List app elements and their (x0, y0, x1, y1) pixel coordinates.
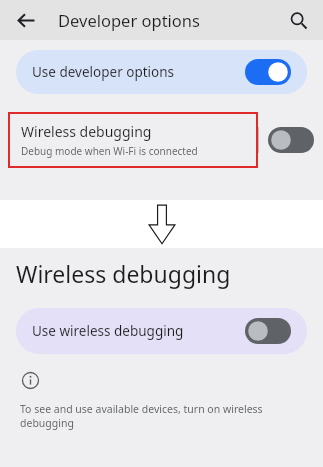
button[interactable]: Use developer options (16, 50, 307, 94)
staticText: Use developer options (32, 63, 245, 81)
staticText: Developer options (58, 9, 200, 31)
button[interactable]: Wireless debugging toggle (259, 112, 323, 168)
staticText: Debug mode when Wi-Fi is connected (21, 144, 198, 158)
staticText: Use wireless debugging (32, 322, 245, 340)
button[interactable]: Use wireless debugging (16, 308, 307, 354)
button[interactable]: Back (10, 4, 42, 36)
button[interactable]: Search (283, 5, 313, 35)
staticText: Wireless debugging (21, 122, 152, 141)
button[interactable]: Wireless debugging (8, 112, 258, 168)
staticText: To see and use available devices, turn o… (20, 402, 297, 430)
staticText: Wireless debugging (16, 258, 231, 289)
